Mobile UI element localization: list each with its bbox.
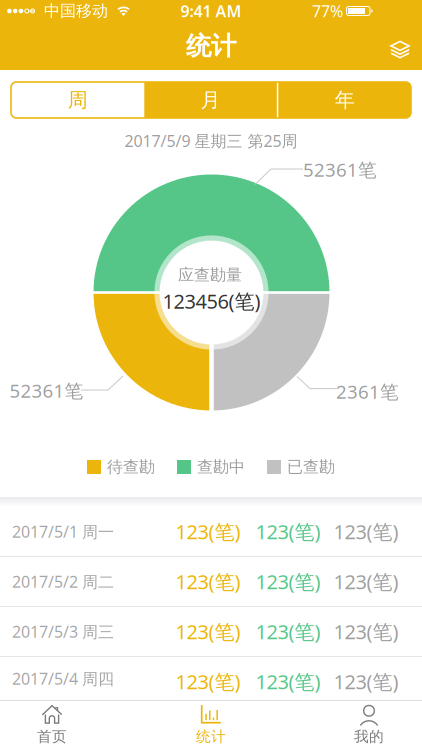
staticText: 123(笔) bbox=[175, 518, 240, 545]
staticText: 首页 bbox=[37, 727, 67, 745]
staticText: 我的 bbox=[354, 727, 384, 745]
staticText: 123(笔) bbox=[175, 568, 240, 595]
staticText: 待查勘 bbox=[107, 457, 155, 477]
staticText: 123(笔) bbox=[255, 618, 320, 645]
staticText: 查勘中 bbox=[197, 457, 245, 477]
button[interactable]: 图层 bbox=[390, 33, 422, 58]
button[interactable]: 周 bbox=[11, 82, 144, 118]
staticText: 52361笔 bbox=[303, 157, 377, 182]
staticText: 2017/5/3 周三 bbox=[12, 621, 114, 642]
staticText: 已查勘 bbox=[287, 457, 335, 477]
staticText: 123(笔) bbox=[175, 618, 240, 645]
staticText: 应查勘量 bbox=[178, 265, 242, 285]
staticText: 123(笔) bbox=[255, 568, 320, 595]
staticText: 123456(笔) bbox=[162, 288, 260, 314]
staticText: 2361笔 bbox=[336, 379, 399, 404]
staticText: 123(笔) bbox=[333, 668, 398, 695]
staticText: 9:41 AM bbox=[180, 0, 241, 22]
staticText: 统计 bbox=[196, 727, 226, 745]
staticText: 月 bbox=[201, 88, 221, 112]
staticText: 123(笔) bbox=[333, 618, 398, 645]
staticText: 2017/5/2 周二 bbox=[12, 571, 114, 592]
button[interactable]: 年 bbox=[278, 82, 411, 118]
staticText: 年 bbox=[335, 88, 355, 112]
button[interactable]: 统计 bbox=[196, 704, 226, 745]
staticText: 123(笔) bbox=[333, 568, 398, 595]
staticText: 中国移动 bbox=[44, 1, 108, 21]
staticText: 123(笔) bbox=[255, 668, 320, 695]
staticText: 77% bbox=[312, 0, 343, 22]
staticText: 2017/5/1 周一 bbox=[12, 521, 114, 542]
staticText: 2017/5/4 周四 bbox=[12, 668, 114, 689]
staticText: 123(笔) bbox=[333, 518, 398, 545]
staticText: 2017/5/9 星期三 第25周 bbox=[124, 130, 297, 151]
button[interactable]: 我的 bbox=[354, 704, 384, 745]
staticText: 52361笔 bbox=[9, 378, 83, 403]
button[interactable]: 月 bbox=[144, 82, 277, 118]
button[interactable]: 首页 bbox=[37, 704, 67, 745]
staticText: 123(笔) bbox=[255, 518, 320, 545]
staticText: 统计 bbox=[186, 30, 236, 61]
staticText: 123(笔) bbox=[175, 668, 240, 695]
staticText: 周 bbox=[68, 88, 88, 112]
